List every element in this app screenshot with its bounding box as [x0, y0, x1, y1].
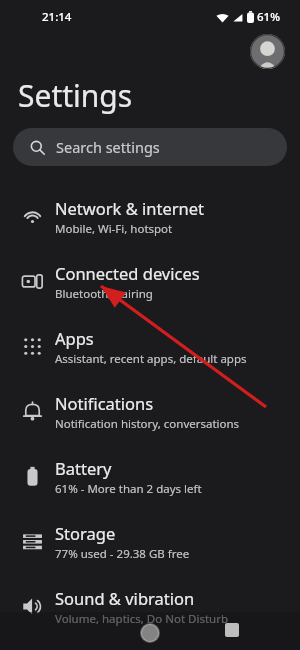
button[interactable]: Battery	[0, 444, 300, 509]
button[interactable]: Storage	[0, 509, 300, 574]
button[interactable]: Search settings	[13, 128, 287, 166]
button[interactable]: Notifications	[0, 379, 300, 444]
button[interactable]: Network & internet	[0, 184, 300, 249]
staticText: Mobile, Wi-Fi, hotspot	[55, 221, 173, 237]
staticText: Battery	[55, 457, 112, 479]
staticText: 61% - More than 2 days left	[55, 481, 202, 497]
button[interactable]: Recents	[225, 623, 239, 637]
staticText: Search settings	[56, 137, 160, 157]
staticText: 61%	[257, 9, 280, 25]
staticText: Sound & vibration	[55, 587, 195, 609]
staticText: 77% used - 29.38 GB free	[55, 546, 190, 562]
button[interactable]: Account	[250, 34, 285, 69]
staticText: Connected devices	[55, 262, 200, 284]
staticText: Settings	[18, 75, 133, 116]
staticText: Network & internet	[55, 197, 205, 219]
staticText: 21:14	[42, 9, 72, 25]
staticText: Volume, haptics, Do Not Disturb	[55, 611, 228, 627]
staticText: Assistant, recent apps, default apps	[55, 351, 247, 367]
staticText: Notifications	[55, 392, 154, 414]
button[interactable]: Sound & vibration	[0, 574, 300, 639]
button[interactable]: Apps	[0, 314, 300, 379]
button[interactable]: Connected devices	[0, 249, 300, 314]
staticText: Storage	[55, 522, 116, 544]
staticText: Apps	[55, 327, 94, 349]
staticText: Notification history, conversations	[55, 416, 240, 432]
staticText: Bluetooth, pairing	[55, 286, 153, 302]
